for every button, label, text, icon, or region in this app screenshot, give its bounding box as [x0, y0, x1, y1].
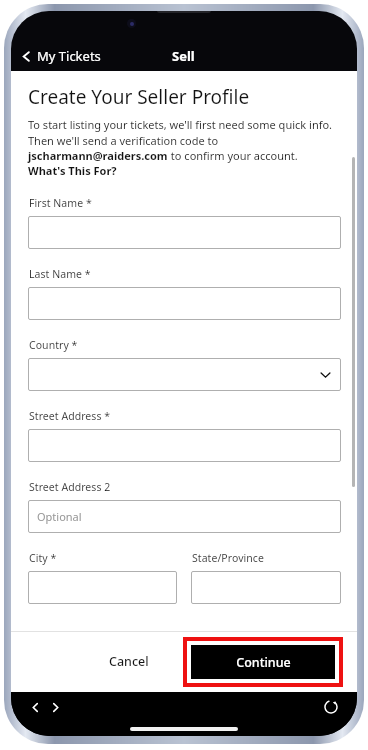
staticText: Cancel	[109, 653, 149, 670]
staticText: State/Province	[192, 551, 264, 565]
staticText: First Name *	[29, 196, 92, 210]
button[interactable]: My Tickets	[11, 43, 109, 69]
staticText: Optional	[37, 509, 82, 524]
button[interactable]: Forward	[47, 699, 64, 716]
button[interactable]: Reload	[321, 697, 341, 717]
staticText: to confirm your account.	[168, 148, 298, 163]
button[interactable]: Back	[27, 699, 44, 716]
staticText: My Tickets	[37, 47, 101, 65]
staticText: Continue	[236, 654, 291, 671]
button[interactable]	[28, 571, 177, 604]
button[interactable]	[28, 216, 341, 249]
staticText: Street Address 2	[29, 480, 111, 494]
button[interactable]	[28, 287, 341, 320]
staticText: To start listing your tickets, we'll fir…	[28, 117, 341, 148]
staticText: Street Address *	[29, 409, 111, 423]
button[interactable]	[28, 358, 341, 391]
staticText: jscharmann@raiders.com	[28, 148, 168, 163]
staticText: Last Name *	[29, 267, 91, 281]
staticText: City *	[29, 551, 57, 565]
staticText: Country *	[29, 338, 78, 352]
button[interactable]: What's This For?	[28, 163, 117, 178]
button[interactable]	[191, 571, 341, 604]
staticText: Sell	[172, 47, 195, 65]
button[interactable]: Cancel	[87, 641, 171, 682]
staticText: Create Your Seller Profile	[28, 84, 250, 110]
button[interactable]: Optional	[28, 500, 341, 533]
button[interactable]	[28, 429, 341, 462]
button[interactable]: Continue	[191, 645, 335, 679]
